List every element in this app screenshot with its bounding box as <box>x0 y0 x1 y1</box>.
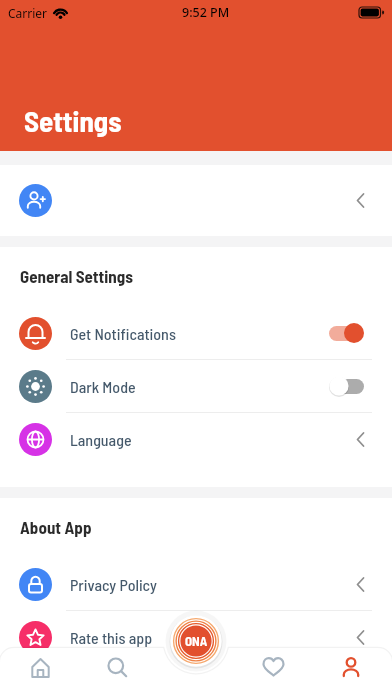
button[interactable] <box>0 648 79 696</box>
staticText: Get Notifications <box>70 324 176 343</box>
staticText: Settings <box>24 103 122 138</box>
staticText: About App <box>20 517 92 537</box>
button[interactable] <box>236 648 314 696</box>
staticText: ONA <box>185 633 208 649</box>
staticText: Rate this app <box>70 628 153 647</box>
staticText: Carrier <box>8 5 48 21</box>
button[interactable] <box>329 323 364 343</box>
button[interactable]: Language <box>0 413 392 465</box>
button[interactable] <box>329 376 364 396</box>
staticText: Language <box>70 430 132 449</box>
button[interactable] <box>79 648 158 696</box>
button[interactable] <box>314 648 392 696</box>
staticText: General Settings <box>20 266 133 286</box>
staticText: Dark Mode <box>70 377 136 396</box>
button[interactable]: Dark Mode <box>0 360 392 412</box>
button[interactable]: Rate this app <box>0 611 392 663</box>
staticText: Privacy Policy <box>70 575 157 594</box>
button[interactable]: Get Notifications <box>0 307 392 359</box>
button[interactable]: Privacy Policy <box>0 558 392 610</box>
button[interactable] <box>0 165 392 236</box>
button[interactable] <box>170 615 222 667</box>
staticText: 9:52 PM <box>182 4 230 21</box>
